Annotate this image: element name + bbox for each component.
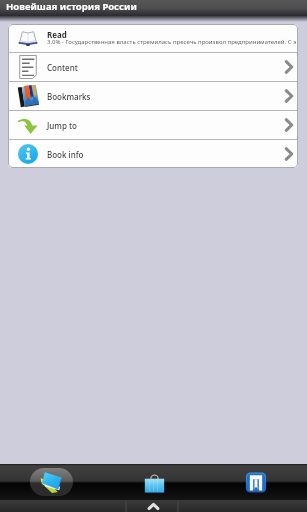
button[interactable]: Bookmarks — [8, 82, 298, 110]
staticText: Read — [47, 29, 67, 40]
staticText: Book info — [47, 149, 284, 160]
staticText: Jump to — [47, 120, 284, 131]
button[interactable]: Store — [103, 464, 205, 500]
button[interactable]: Read — [8, 24, 298, 52]
button[interactable]: Jump to — [8, 111, 298, 139]
button[interactable]: Content — [8, 53, 298, 81]
staticText: Bookmarks — [47, 91, 284, 102]
staticText: Новейшая история России — [6, 0, 137, 13]
staticText: 3.0% - Государственная власть стремилась… — [47, 38, 297, 46]
button[interactable]: Library — [0, 464, 103, 500]
button[interactable]: Bookmarks — [205, 464, 307, 500]
button[interactable]: Book info — [8, 140, 298, 168]
staticText: Content — [47, 62, 284, 73]
